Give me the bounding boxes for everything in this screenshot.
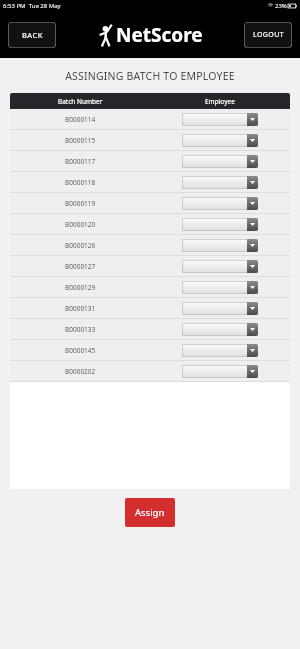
button[interactable]: Select employee [182, 176, 258, 189]
button[interactable]: LOGOUT [244, 22, 292, 48]
staticText: ASSINGING BATCH TO EMPLOYEE [0, 69, 300, 83]
button[interactable]: Select employee [182, 134, 258, 147]
staticText: B0000119 [65, 199, 96, 208]
button[interactable]: B0000118 [10, 172, 290, 192]
button[interactable]: B0000117 [10, 151, 290, 171]
button[interactable]: Select employee [182, 281, 258, 294]
button[interactable]: B0000119 [10, 193, 290, 213]
staticText: Batch Number [58, 97, 103, 106]
button[interactable]: Select employee [182, 218, 258, 231]
button[interactable]: Assign [125, 498, 175, 527]
button[interactable]: Select employee [182, 155, 258, 168]
staticText: B0000114 [65, 115, 96, 124]
staticText: 6:53 PM Tue 28 May [3, 2, 61, 10]
staticText: B0000145 [65, 346, 96, 355]
button[interactable]: Select employee [182, 113, 258, 126]
button[interactable]: B0000202 [10, 361, 290, 381]
button[interactable]: B0000131 [10, 298, 290, 318]
button[interactable]: Select employee [182, 302, 258, 315]
button[interactable]: B0000126 [10, 235, 290, 255]
staticText: B0000131 [65, 304, 96, 313]
button[interactable]: Select employee [182, 260, 258, 273]
button[interactable]: Select employee [182, 239, 258, 252]
staticText: B0000117 [65, 157, 96, 166]
staticText: B0000133 [65, 325, 96, 334]
button[interactable]: Select employee [182, 344, 258, 357]
button[interactable]: B0000115 [10, 130, 290, 150]
staticText: B0000202 [65, 367, 96, 376]
button[interactable]: Select employee [182, 323, 258, 336]
button[interactable]: B0000120 [10, 214, 290, 234]
button[interactable]: B0000129 [10, 277, 290, 297]
staticText: B0000127 [65, 262, 96, 271]
staticText: B0000118 [65, 178, 96, 187]
button[interactable]: Select employee [182, 365, 258, 378]
staticText: B0000120 [65, 220, 96, 229]
button[interactable]: BACK [8, 22, 56, 48]
staticText: B0000126 [65, 241, 96, 250]
button[interactable]: Select employee [182, 197, 258, 210]
button[interactable]: B0000127 [10, 256, 290, 276]
button[interactable]: B0000114 [10, 109, 290, 129]
staticText: B0000115 [65, 136, 96, 145]
staticText: LOGOUT [253, 30, 284, 40]
button[interactable]: B0000145 [10, 340, 290, 360]
staticText: 23% [275, 2, 287, 10]
staticText: NetScore [116, 22, 203, 48]
staticText: Employee [205, 97, 235, 106]
staticText: B0000129 [65, 283, 96, 292]
staticText: Assign [135, 506, 165, 519]
button[interactable]: B0000133 [10, 319, 290, 339]
staticText: BACK [22, 30, 43, 40]
